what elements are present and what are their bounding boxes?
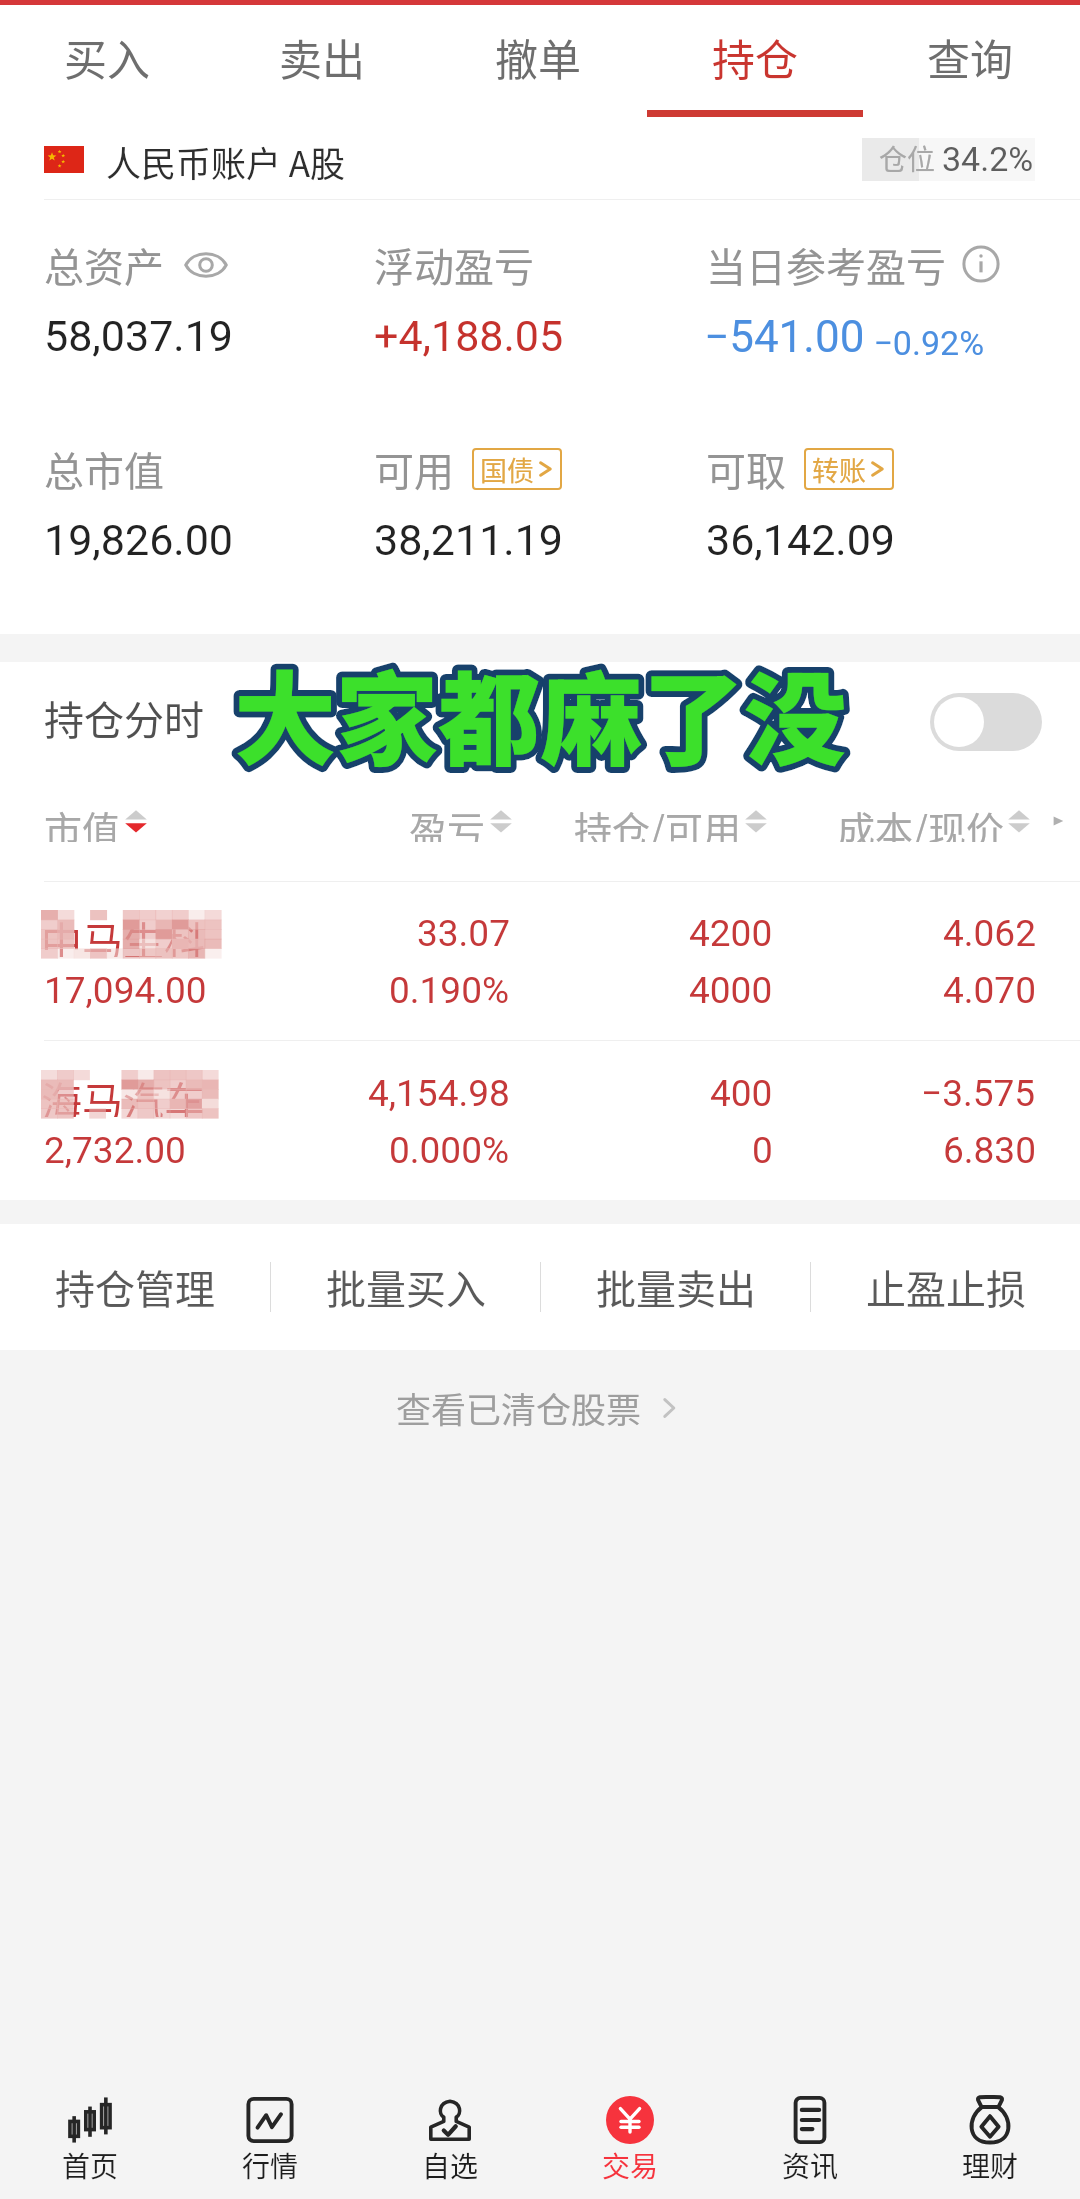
staticText: 19,826.00 — [44, 515, 233, 565]
staticText: 中马生科技 — [41, 909, 221, 957]
staticText: 卖出 — [279, 26, 365, 88]
other: Market — [246, 2096, 294, 2144]
button[interactable]: Wealth — [900, 2029, 1080, 2199]
staticText: 首页 — [62, 2145, 119, 2186]
button[interactable]: 查看已清仓股票 — [0, 1350, 1080, 1465]
button[interactable]: News — [720, 2029, 900, 2199]
button[interactable]: 仓位 — [862, 138, 1035, 181]
staticText: 38,211.19 — [374, 515, 563, 565]
button[interactable]: 交易 — [540, 2029, 720, 2199]
button[interactable]: 撤单 — [430, 5, 646, 118]
staticText: 盈亏 — [409, 800, 486, 842]
staticText: 当日参考盈亏 — [706, 236, 946, 294]
button[interactable]: Toggle intraday chart — [930, 693, 1042, 751]
staticText: 可用 — [374, 440, 454, 498]
staticText: 持仓/可用 — [574, 800, 741, 842]
staticText: 查看已清仓股票 — [396, 1382, 642, 1433]
staticText: 4200 — [689, 912, 773, 955]
staticText: 理财 — [962, 2145, 1019, 2186]
staticText: 批量买入 — [326, 1258, 486, 1316]
staticText: 行情 — [242, 2145, 299, 2186]
staticText: 撤单 — [495, 26, 581, 88]
staticText: 400 — [710, 1072, 773, 1115]
staticText: −541.00 — [704, 311, 865, 363]
button[interactable]: 市值 — [44, 800, 148, 842]
button[interactable]: 海马汽车城 — [0, 1041, 1080, 1201]
staticText: −0.92% — [865, 323, 985, 363]
button[interactable]: 卖出 — [214, 5, 430, 118]
staticText: 人民币账户 A股 — [106, 136, 346, 182]
staticText: 总市值 — [44, 440, 164, 498]
staticText: 4.062 — [943, 912, 1036, 955]
staticText: 浮动盈亏 — [374, 236, 534, 294]
staticText: 0.000% — [389, 1129, 510, 1172]
staticText: 4,154.98 — [368, 1072, 510, 1115]
staticText: 批量卖出 — [596, 1258, 756, 1316]
staticText: 市值 — [44, 800, 121, 842]
button[interactable]: 持仓管理 — [0, 1224, 270, 1350]
staticText: 4.070 — [943, 969, 1036, 1012]
staticText: 可取 — [706, 440, 786, 498]
staticText: 0 — [752, 1129, 773, 1172]
button[interactable]: 买入 — [0, 5, 215, 118]
staticText: 交易 — [602, 2145, 659, 2186]
staticText: 6.830 — [943, 1129, 1036, 1172]
button[interactable]: 成本/现价 — [837, 800, 1069, 842]
other: Wealth — [966, 2096, 1014, 2144]
staticText: 总资产 — [44, 236, 164, 294]
staticText: 58,037.19 — [44, 311, 233, 361]
staticText: 自选 — [422, 2145, 479, 2186]
other: Watchlist — [426, 2096, 474, 2144]
staticText: 止盈止损 — [866, 1258, 1026, 1316]
staticText: 大家都麻了没 — [234, 639, 846, 787]
staticText: 大家都麻了没 — [234, 639, 846, 787]
button[interactable]: 中马生科技 — [0, 881, 1080, 1041]
staticText: 36,142.09 — [706, 515, 895, 565]
staticText: +4,188.05 — [374, 311, 564, 361]
staticText: 0.190% — [389, 969, 510, 1012]
staticText: 33.07 — [417, 912, 510, 955]
staticText: 17,094.00 — [44, 969, 207, 1012]
staticText: 4000 — [689, 969, 773, 1012]
button[interactable]: 转账 — [812, 448, 888, 490]
other: Home — [66, 2096, 114, 2144]
staticText: 资讯 — [782, 2145, 839, 2186]
staticText: 转账 — [812, 450, 866, 489]
staticText: 查询 — [927, 26, 1013, 88]
staticText: 海马汽车城 — [41, 1069, 218, 1117]
staticText: 持仓 — [712, 26, 798, 88]
button[interactable]: Home — [0, 2029, 180, 2199]
button[interactable]: 盈亏 — [409, 800, 513, 842]
staticText: 买入 — [64, 26, 150, 88]
other: News — [786, 2096, 834, 2144]
staticText: 国债 — [480, 450, 534, 489]
staticText: 持仓分时 — [44, 689, 204, 747]
staticText: 仓位 — [879, 138, 936, 179]
button[interactable]: 批量卖出 — [541, 1224, 810, 1350]
staticText: 2,732.00 — [44, 1129, 186, 1172]
button[interactable]: 止盈止损 — [811, 1224, 1080, 1350]
button[interactable]: 国债 — [480, 448, 556, 490]
staticText: 成本/现价 — [837, 800, 1004, 842]
staticText: −3.575 — [921, 1072, 1036, 1115]
button[interactable]: Market — [180, 2029, 360, 2199]
staticText: 持仓管理 — [55, 1258, 215, 1316]
button[interactable]: 持仓/可用 — [574, 800, 768, 842]
button[interactable]: 查询 — [862, 5, 1078, 118]
button[interactable]: 批量买入 — [271, 1224, 540, 1350]
button[interactable]: Watchlist — [360, 2029, 540, 2199]
staticText: 34.2% — [942, 139, 1034, 179]
button[interactable]: 持仓 — [647, 5, 863, 118]
